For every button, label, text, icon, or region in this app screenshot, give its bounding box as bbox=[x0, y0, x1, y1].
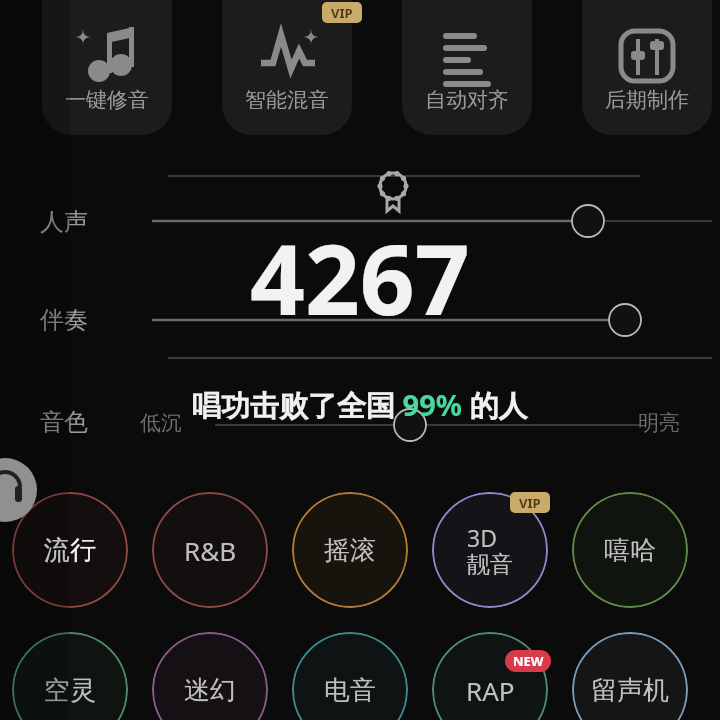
staticText: 空灵 bbox=[44, 674, 96, 707]
staticText: NEW bbox=[513, 652, 544, 670]
staticText: 迷幻 bbox=[184, 674, 236, 707]
staticText: 电音 bbox=[324, 674, 376, 707]
button[interactable]: 嘻哈 bbox=[572, 492, 688, 608]
staticText: 唱功击败了全国 99% 的人 bbox=[192, 385, 528, 425]
staticText: R&B bbox=[184, 533, 237, 568]
staticText: 留声机 bbox=[591, 674, 669, 707]
button[interactable]: Headphone monitor bbox=[0, 458, 37, 522]
button[interactable]: 空灵 bbox=[12, 632, 128, 720]
button[interactable]: 电音 bbox=[292, 632, 408, 720]
staticText: 后期制作 bbox=[605, 87, 689, 113]
button[interactable]: 流行 bbox=[12, 492, 128, 608]
button[interactable] bbox=[222, 0, 352, 135]
staticText: 人声 bbox=[40, 207, 88, 237]
staticText: RAP bbox=[466, 673, 515, 708]
staticText: 嘻哈 bbox=[604, 534, 656, 567]
button[interactable]: 留声机 bbox=[572, 632, 688, 720]
button[interactable] bbox=[582, 0, 712, 135]
staticText: VIP bbox=[519, 494, 541, 512]
staticText: 低沉 bbox=[140, 410, 182, 436]
staticText: 伴奏 bbox=[40, 305, 88, 335]
staticText: 一键修音 bbox=[65, 87, 149, 113]
button[interactable]: 迷幻 bbox=[152, 632, 268, 720]
button[interactable] bbox=[42, 0, 172, 135]
button[interactable]: 摇滚 bbox=[292, 492, 408, 608]
button[interactable]: RAP bbox=[432, 632, 548, 720]
staticText: 智能混音 bbox=[245, 87, 329, 113]
staticText: 音色 bbox=[40, 407, 88, 437]
button[interactable]: 3D 靓音 bbox=[432, 492, 548, 608]
staticText: 摇滚 bbox=[324, 534, 376, 567]
staticText: 流行 bbox=[44, 534, 96, 567]
staticText: VIP bbox=[331, 4, 353, 22]
staticText: 明亮 bbox=[638, 410, 680, 436]
button[interactable] bbox=[402, 0, 532, 135]
button[interactable]: R&B bbox=[152, 492, 268, 608]
staticText: 4267 bbox=[250, 212, 470, 322]
staticText: 3D 靓音 bbox=[467, 522, 513, 579]
staticText: 自动对齐 bbox=[425, 87, 509, 113]
